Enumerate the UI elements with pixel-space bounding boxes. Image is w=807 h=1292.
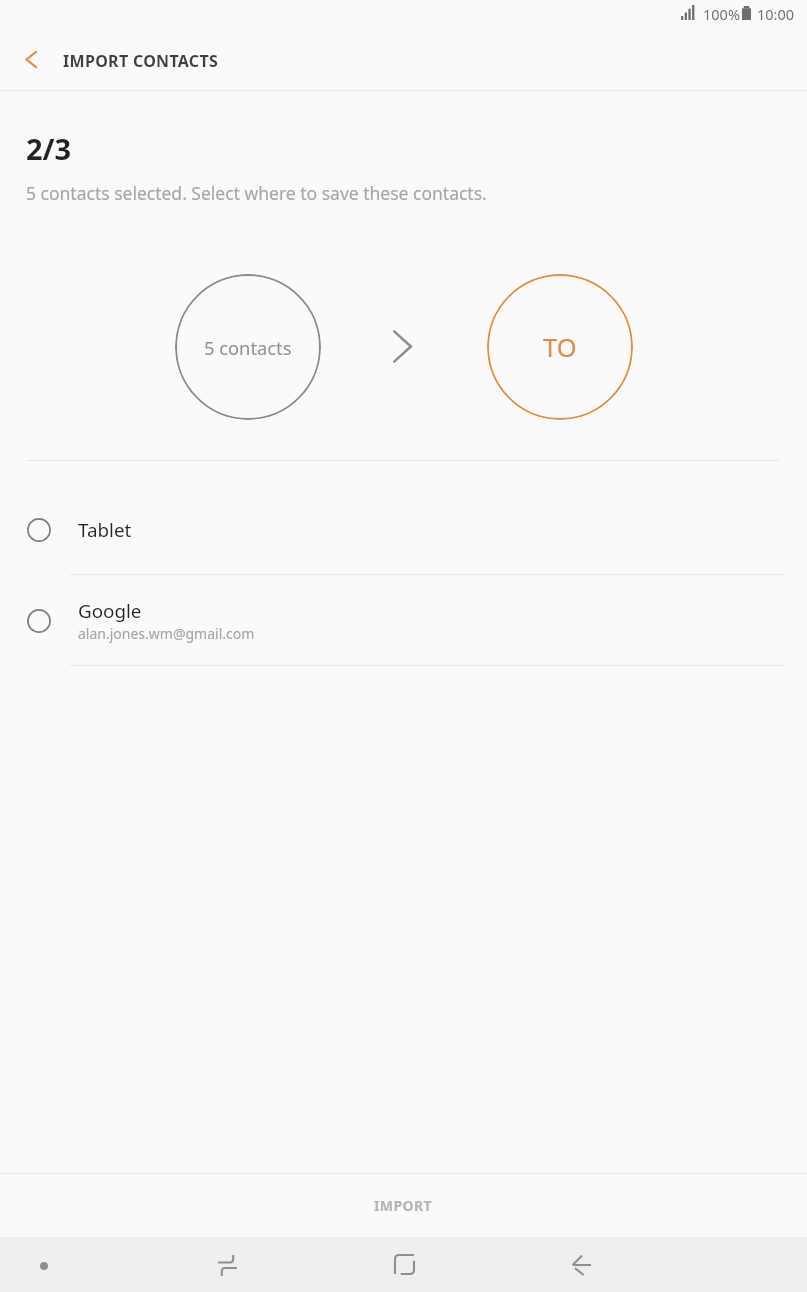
staticText: 10:00 bbox=[757, 4, 795, 24]
staticText: 2/3 bbox=[26, 129, 72, 168]
button[interactable]: Back bbox=[11, 40, 53, 82]
staticText: 5 contacts bbox=[204, 335, 292, 360]
staticText: IMPORT CONTACTS bbox=[63, 50, 219, 72]
staticText: TO bbox=[543, 330, 577, 365]
staticText: Google bbox=[78, 598, 142, 624]
staticText: Tablet bbox=[78, 517, 132, 543]
button[interactable]: Home bbox=[359, 1237, 449, 1292]
staticText: alan.jones.wm@gmail.com bbox=[78, 624, 255, 643]
staticText: IMPORT bbox=[374, 1196, 433, 1215]
staticText: 100% bbox=[703, 4, 740, 24]
button[interactable]: Google bbox=[0, 575, 807, 666]
button[interactable]: IMPORT bbox=[0, 1174, 807, 1237]
button[interactable]: Back bbox=[536, 1237, 626, 1292]
button[interactable]: Recents bbox=[182, 1237, 272, 1292]
button[interactable]: Menu bbox=[0, 1237, 89, 1292]
staticText: 5 contacts selected. Select where to sav… bbox=[26, 181, 487, 205]
button[interactable]: Tablet bbox=[0, 485, 807, 575]
